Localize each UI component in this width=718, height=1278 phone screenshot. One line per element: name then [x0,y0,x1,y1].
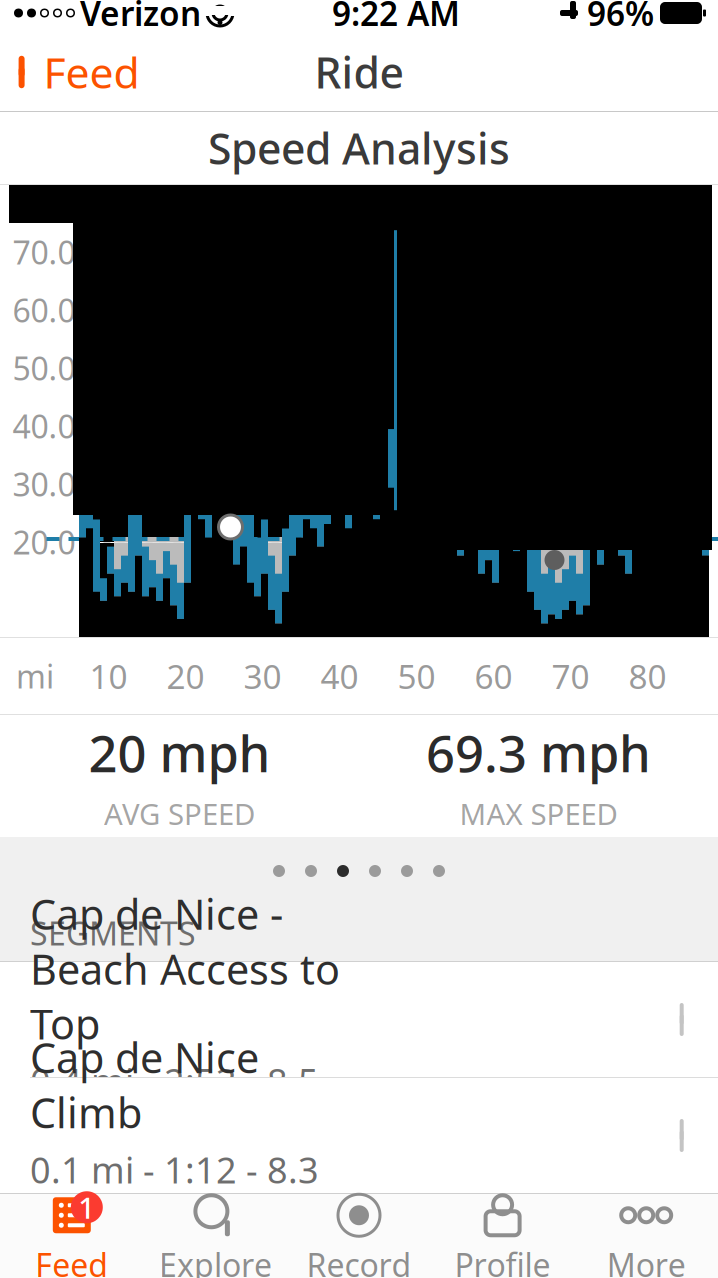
staticText: Speed Analysis [208,120,510,176]
button[interactable]: 1 [0,1185,144,1278]
button[interactable]: Feed [0,36,140,108]
staticText: MAX SPEED [459,794,617,833]
staticText: 1 [78,1188,95,1227]
staticText: 60 [474,654,512,698]
staticText: 10 [89,654,127,698]
staticText: 9:22 AM [332,0,460,35]
staticText: 30.0 [12,463,75,505]
staticText: Ride [314,44,403,100]
staticText: AVG SPEED [104,794,255,833]
staticText: 0.1 mi - 1:12 - 8.3 mph [30,1146,319,1241]
staticText: 60.0 [12,289,75,331]
staticText: 80 [628,654,666,698]
staticText: 20 [166,654,204,698]
staticText: Cap de Nice - Beach Access to Top [30,886,340,1051]
staticText: 69.3 mph [426,719,651,786]
staticText: Record [306,1243,411,1278]
button[interactable]: Cap de Nice - Beach Access to Top [0,962,718,1077]
button[interactable]: Cap de Nice Climb [0,1078,718,1193]
staticText: 96% [587,0,654,35]
staticText: Verizon [80,0,201,35]
staticText: 20 mph [88,719,270,786]
staticText: Explore [159,1243,272,1278]
staticText: Profile [455,1243,551,1278]
staticText: 30 [243,654,281,698]
staticText: 0.4 mi - 2:53 - 8.5 mph [30,1057,319,1153]
button[interactable]: Record [287,1185,431,1278]
staticText: mi [16,655,54,697]
staticText: 50.0 [12,347,75,389]
button[interactable]: More [574,1185,718,1278]
button[interactable]: Explore [144,1185,287,1278]
staticText: Feed [44,44,140,100]
staticText: Feed [35,1243,108,1278]
staticText: Cap de Nice Climb [30,1030,259,1140]
staticText: 20.0 [12,521,75,563]
staticText: 70.0 [12,231,75,273]
staticText: 40 [320,654,358,698]
button[interactable]: Profile [431,1185,574,1278]
staticText: SEGMENTS [30,912,196,954]
staticText: More [607,1243,686,1278]
staticText: 70 [551,654,589,698]
staticText: 50 [397,654,435,698]
staticText: 40.0 [12,405,75,447]
